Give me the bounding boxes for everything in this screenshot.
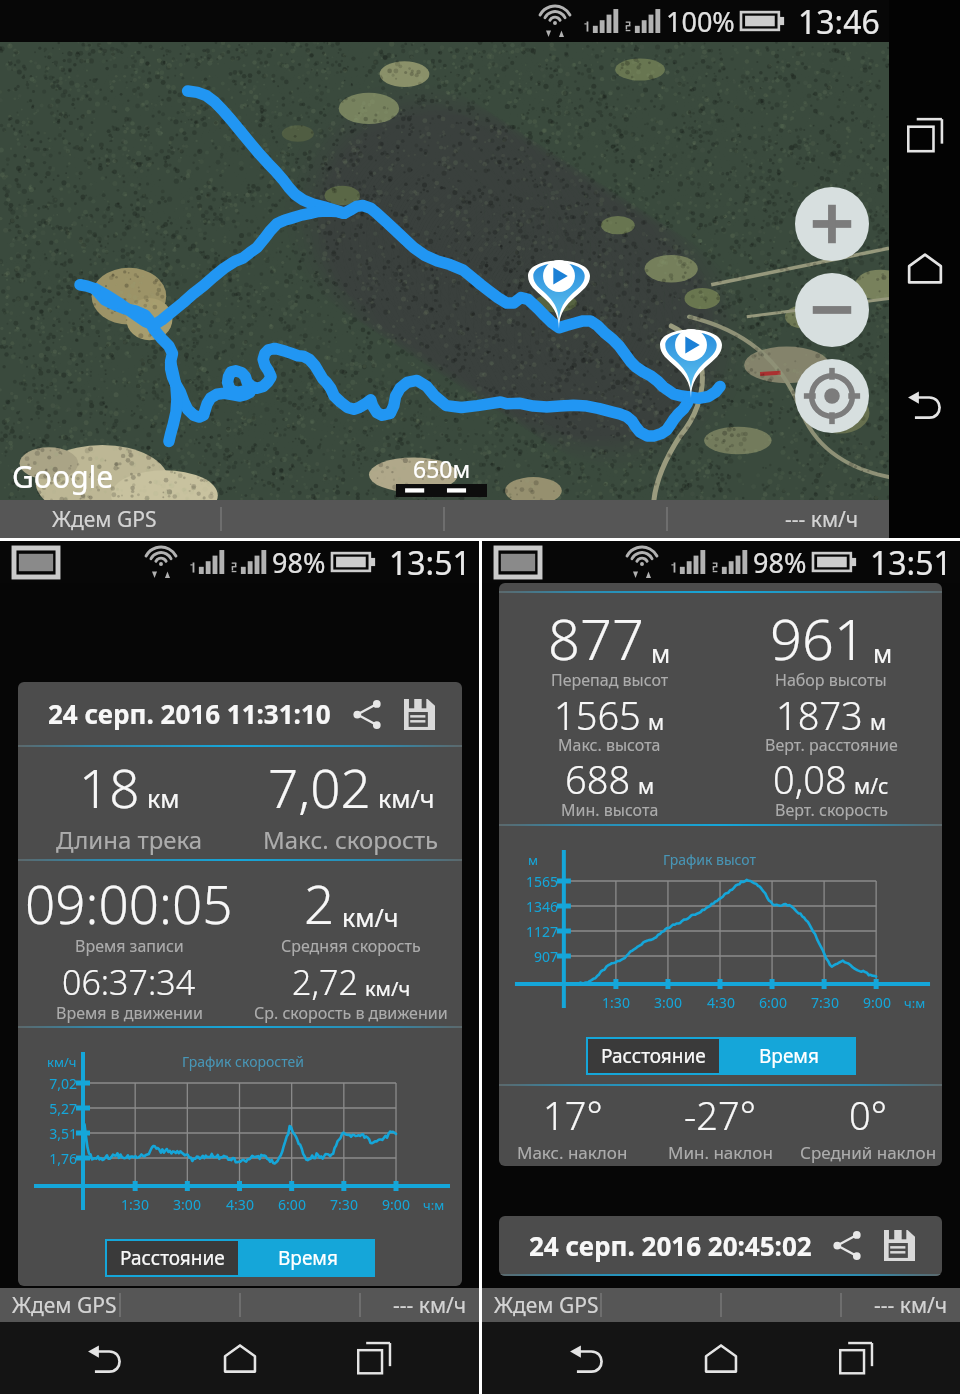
staticText: 3,51 <box>22 1124 77 1143</box>
staticText: 18 <box>79 751 140 823</box>
staticText: 7,02 <box>268 751 371 823</box>
button[interactable]: Share <box>826 1224 868 1266</box>
staticText: 6:00 <box>266 1195 318 1214</box>
staticText: 98% <box>272 544 326 581</box>
staticText: 9:00 <box>370 1195 422 1214</box>
button[interactable]: Recent apps <box>826 1328 886 1388</box>
staticText: м <box>870 708 887 737</box>
staticText: 9:00 <box>851 993 903 1012</box>
staticText: Время <box>278 1245 338 1271</box>
button[interactable]: Home <box>892 235 958 301</box>
staticText: м <box>648 708 665 737</box>
button[interactable]: Расстояние <box>588 1039 719 1073</box>
staticText: Расстояние <box>601 1043 706 1069</box>
button[interactable]: Home <box>210 1328 270 1388</box>
staticText: 3:00 <box>161 1195 213 1214</box>
staticText: Google <box>12 456 114 497</box>
staticText: Время <box>759 1043 819 1069</box>
button[interactable]: Save <box>878 1224 920 1266</box>
staticText: 1565 <box>554 689 641 741</box>
staticText: 4:30 <box>695 993 747 1012</box>
staticText: км/ч <box>365 975 411 1002</box>
staticText: 1,76 <box>22 1149 77 1168</box>
staticText: Макс. высота <box>558 734 661 756</box>
staticText: 7:30 <box>799 993 851 1012</box>
button[interactable]: Zoom in <box>795 187 869 261</box>
button[interactable]: Recent apps <box>892 102 958 168</box>
staticText: Мин. высота <box>561 799 659 821</box>
staticText: Ср. скорость в движении <box>254 1002 448 1024</box>
staticText: ч:м <box>423 1196 445 1214</box>
button[interactable]: Home <box>691 1328 751 1388</box>
staticText: 1346 <box>503 897 558 916</box>
staticText: 24 серп. 2016 20:45:02 <box>529 1228 812 1263</box>
staticText: --- км/ч <box>874 1291 948 1320</box>
staticText: 7,02 <box>22 1074 77 1093</box>
staticText: Время в движении <box>56 1002 203 1024</box>
staticText: Ждем GPS <box>494 1291 599 1320</box>
staticText: 5,27 <box>22 1099 77 1118</box>
staticText: 98% <box>753 544 807 581</box>
staticText: 24 серп. 2016 11:31:10 <box>48 696 331 731</box>
button[interactable]: Back <box>75 1328 135 1388</box>
staticText: 1565 <box>503 872 558 891</box>
staticText: Перепад высот <box>551 669 669 691</box>
staticText: Средняя скорость <box>281 935 421 957</box>
button[interactable]: Back <box>557 1328 617 1388</box>
staticText: 7:30 <box>318 1195 370 1214</box>
staticText: 688 <box>565 753 631 805</box>
button[interactable]: Recent apps <box>344 1328 404 1388</box>
staticText: Длина трека <box>56 823 203 856</box>
staticText: 0° <box>849 1089 887 1141</box>
staticText: Средний наклон <box>800 1141 937 1164</box>
staticText: Ждем GPS <box>52 505 157 534</box>
staticText: км/ч <box>342 900 399 934</box>
staticText: ч:м <box>904 994 926 1012</box>
staticText: 100% <box>666 3 735 40</box>
staticText: Макс. скорость <box>263 823 439 856</box>
staticText: 06:37:34 <box>62 959 196 1005</box>
staticText: -27° <box>684 1089 756 1141</box>
button[interactable]: Share <box>346 693 388 735</box>
staticText: Время записи <box>75 935 184 957</box>
staticText: 13:51 <box>870 541 952 583</box>
staticText: График скоростей <box>182 1052 304 1071</box>
button[interactable]: My location <box>795 359 869 433</box>
staticText: км/ч <box>47 1053 77 1071</box>
staticText: 2,72 <box>292 959 358 1005</box>
button[interactable]: Save <box>398 693 440 735</box>
staticText: Макс. наклон <box>517 1141 628 1164</box>
staticText: Верт. расстояние <box>765 734 898 756</box>
button[interactable]: Zoom out <box>795 273 869 347</box>
staticText: 3:00 <box>642 993 694 1012</box>
staticText: Расстояние <box>120 1245 225 1271</box>
staticText: м/с <box>854 772 889 801</box>
button[interactable]: Время <box>240 1239 375 1277</box>
staticText: 09:00:05 <box>25 867 233 939</box>
staticText: м <box>638 772 655 801</box>
staticText: Мин. наклон <box>668 1141 773 1164</box>
staticText: 13:51 <box>389 541 471 583</box>
staticText: 17° <box>543 1089 603 1141</box>
staticText: Набор высоты <box>775 669 887 691</box>
staticText: м <box>528 851 538 869</box>
staticText: 1:30 <box>109 1195 161 1214</box>
button[interactable]: Время <box>721 1037 856 1075</box>
staticText: 1873 <box>776 689 863 741</box>
staticText: Верт. скорость <box>775 799 888 821</box>
staticText: 1127 <box>503 922 558 941</box>
staticText: км <box>147 781 180 815</box>
staticText: 2 <box>304 867 335 939</box>
staticText: км/ч <box>378 781 435 815</box>
staticText: 4:30 <box>214 1195 266 1214</box>
staticText: --- км/ч <box>393 1291 467 1320</box>
staticText: м <box>651 636 671 670</box>
staticText: 13:46 <box>798 0 880 42</box>
button[interactable]: Back <box>892 371 958 437</box>
staticText: График высот <box>663 850 757 869</box>
button[interactable]: Расстояние <box>107 1241 238 1275</box>
staticText: м <box>873 636 893 670</box>
staticText: 650м <box>413 453 471 484</box>
staticText: 961 <box>770 600 866 676</box>
staticText: 0,08 <box>773 753 847 805</box>
